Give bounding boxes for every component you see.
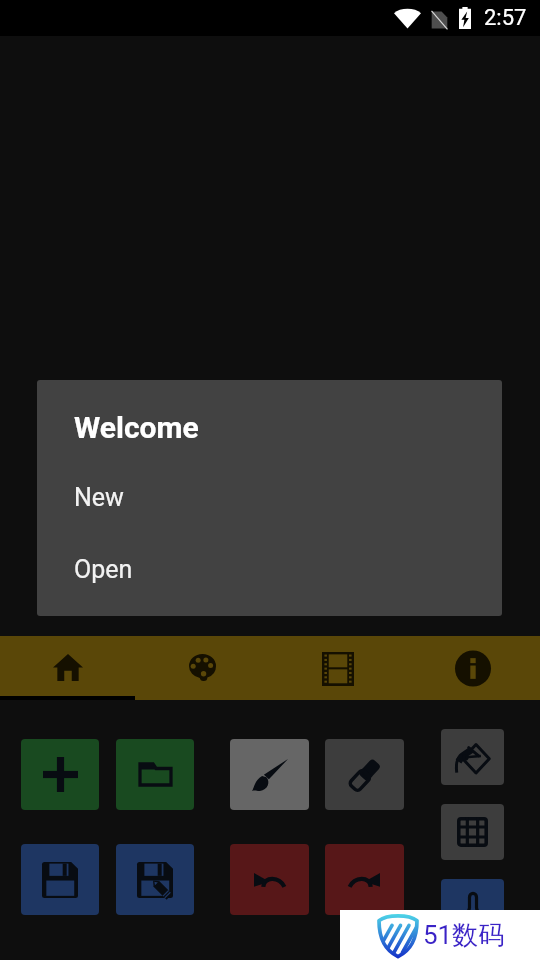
button[interactable]: Save [21, 844, 99, 915]
button[interactable]: Eraser [325, 739, 404, 810]
button[interactable]: Grid [441, 804, 504, 860]
button[interactable]: Brush [230, 739, 309, 810]
button[interactable]: Open [37, 543, 502, 595]
staticText: 2:57 [484, 5, 527, 31]
staticText: Welcome [74, 410, 199, 445]
button[interactable]: Redo [325, 844, 404, 915]
button[interactable]: Stamp [441, 879, 504, 935]
button[interactable]: Home [0, 636, 135, 700]
staticText: New [74, 483, 124, 512]
button[interactable]: Colors [135, 636, 270, 700]
staticText: Open [74, 555, 133, 584]
button[interactable]: Frames [270, 636, 405, 700]
button[interactable]: New [37, 471, 502, 523]
button[interactable]: Undo [230, 844, 309, 915]
button[interactable]: Save as [116, 844, 194, 915]
button[interactable]: Info [405, 636, 540, 700]
button[interactable]: New [21, 739, 99, 810]
staticText: 51数码 [423, 919, 505, 952]
button[interactable]: Fill [441, 729, 504, 785]
button[interactable]: Open [116, 739, 194, 810]
